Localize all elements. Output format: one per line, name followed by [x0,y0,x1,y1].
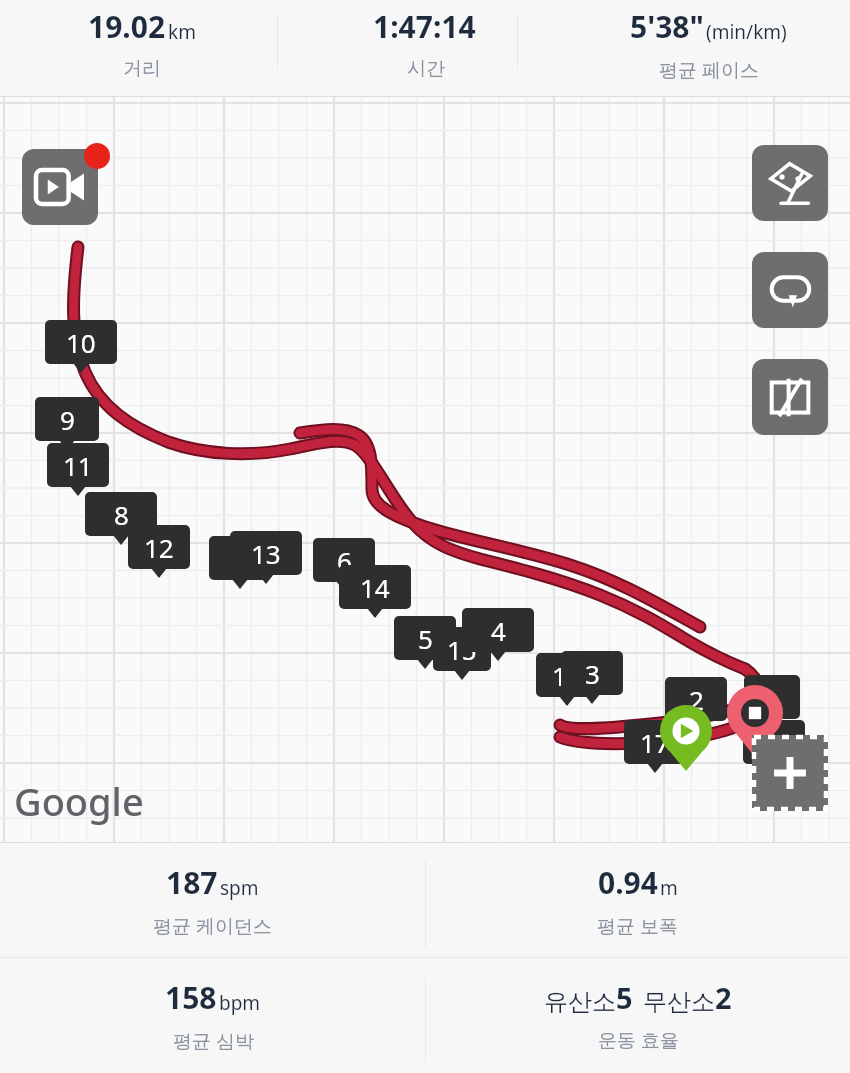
button[interactable]: Expand map [752,735,828,811]
staticText: 평균 보폭 [597,913,678,939]
staticText: 시간 [407,57,445,81]
staticText: 18 [759,725,789,760]
button[interactable]: Start point [660,705,712,771]
staticText: 158 [165,977,217,1018]
staticText: 9 [60,402,75,437]
staticText: Google [14,775,144,827]
button[interactable]: Map layers [752,145,828,221]
staticText: 19.02 [88,6,166,47]
staticText: 0.94 [598,862,658,903]
staticText: 11 [63,448,93,483]
button[interactable]: Replay route [752,252,828,328]
staticText: 12 [144,530,174,565]
staticText: 5 [616,978,633,1017]
staticText: 유산소 [544,987,616,1017]
staticText: 13 [251,536,281,571]
staticText: 10 [66,325,96,360]
staticText: (min/km) [706,19,787,45]
staticText: 5'38" [630,6,704,47]
staticText: 운동 효율 [598,1027,679,1053]
staticText: 16 [552,658,582,693]
staticText: 6 [337,543,352,578]
staticText: 평균 페이스 [659,57,759,83]
staticText: 15 [447,632,477,667]
staticText: 거리 [123,57,161,81]
staticText: 평균 케이던스 [153,913,272,939]
staticText: 14 [360,570,390,605]
staticText: 4 [491,613,506,648]
staticText: 2 [715,978,732,1017]
staticText: 8 [114,497,129,532]
button[interactable]: End point [727,685,783,757]
staticText: 17 [640,725,670,760]
staticText: 무산소 [643,987,715,1017]
staticText: 3 [585,656,600,691]
staticText: 187 [166,862,218,903]
button[interactable]: Toggle chart [752,359,828,435]
staticText: bpm [219,990,261,1016]
staticText: 1:47:14 [373,6,476,47]
staticText: km [168,19,196,45]
staticText: 2 [689,682,704,717]
staticText: m [660,875,678,901]
staticText: spm [220,875,259,901]
button[interactable]: Play video [22,149,98,225]
staticText: 평균 심박 [173,1028,254,1054]
staticText: 5 [418,621,433,656]
